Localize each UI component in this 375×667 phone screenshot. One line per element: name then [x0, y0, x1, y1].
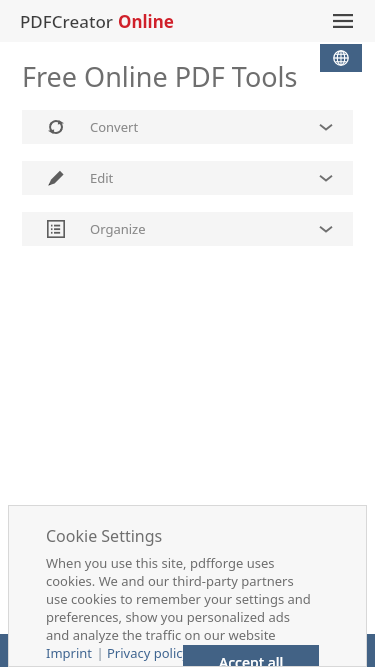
button[interactable]: Privacy policy	[107, 644, 190, 662]
staticText: |	[93, 644, 107, 662]
staticText: Cookie Settings	[46, 525, 163, 547]
staticText: Imprint	[46, 644, 93, 662]
button[interactable]: Language	[320, 44, 362, 72]
button[interactable]: PDFCreator	[20, 10, 174, 33]
button[interactable]: Edit	[22, 161, 353, 195]
button[interactable]: Menu	[329, 7, 357, 35]
staticText: Organize	[90, 220, 146, 238]
staticText: Online	[118, 10, 174, 33]
staticText: Convert	[90, 118, 139, 136]
staticText: When you use this site, pdfforge uses co…	[46, 554, 311, 644]
staticText: Free Online PDF Tools	[22, 58, 298, 95]
button[interactable]: Organize	[22, 212, 353, 246]
staticText: PDFCreator	[20, 10, 118, 33]
staticText: Edit	[90, 169, 114, 187]
button[interactable]: Convert	[22, 110, 353, 144]
staticText: Accept all	[219, 653, 284, 667]
button[interactable]: Imprint	[46, 644, 93, 662]
staticText: Privacy policy	[107, 644, 190, 662]
button[interactable]: Accept all	[183, 645, 319, 667]
